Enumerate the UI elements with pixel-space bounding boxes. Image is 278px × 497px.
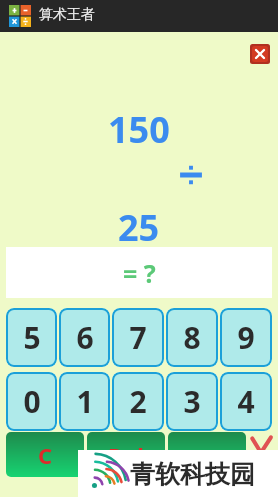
staticText: 2 [129,381,147,422]
staticText: 25 [118,203,160,252]
staticText: 0 [23,381,41,422]
staticText: 3 [183,381,201,422]
staticText: 4 [237,381,255,422]
staticText: 6 [76,317,94,358]
staticText: Del [108,440,144,470]
button[interactable]: 6 [59,308,110,367]
button[interactable]: = [168,432,246,477]
button[interactable]: 8 [166,308,218,367]
button[interactable]: C [6,432,84,477]
button[interactable]: Close [250,44,270,64]
staticText: C [38,440,53,470]
staticText: 5 [23,317,41,358]
staticText: 青软科技园 [130,459,255,490]
button[interactable]: 2 [112,372,164,431]
staticText: 1 [76,381,94,422]
staticText: 150 [108,105,170,154]
staticText: 9 [237,317,255,358]
staticText: = [201,440,214,470]
button[interactable]: 1 [59,372,110,431]
button[interactable]: = ? [6,247,272,298]
staticText: = ? [123,256,156,290]
button[interactable]: 4 [220,372,272,431]
button[interactable]: 3 [166,372,218,431]
button[interactable]: Confirm [250,434,272,456]
button[interactable]: 5 [6,308,57,367]
staticText: 8 [183,317,201,358]
button[interactable]: 7 [112,308,164,367]
button[interactable]: Del [87,432,165,477]
button[interactable]: 9 [220,308,272,367]
staticText: 算术王者 [39,6,95,24]
button[interactable]: 0 [6,372,57,431]
staticText: 7 [129,317,147,358]
